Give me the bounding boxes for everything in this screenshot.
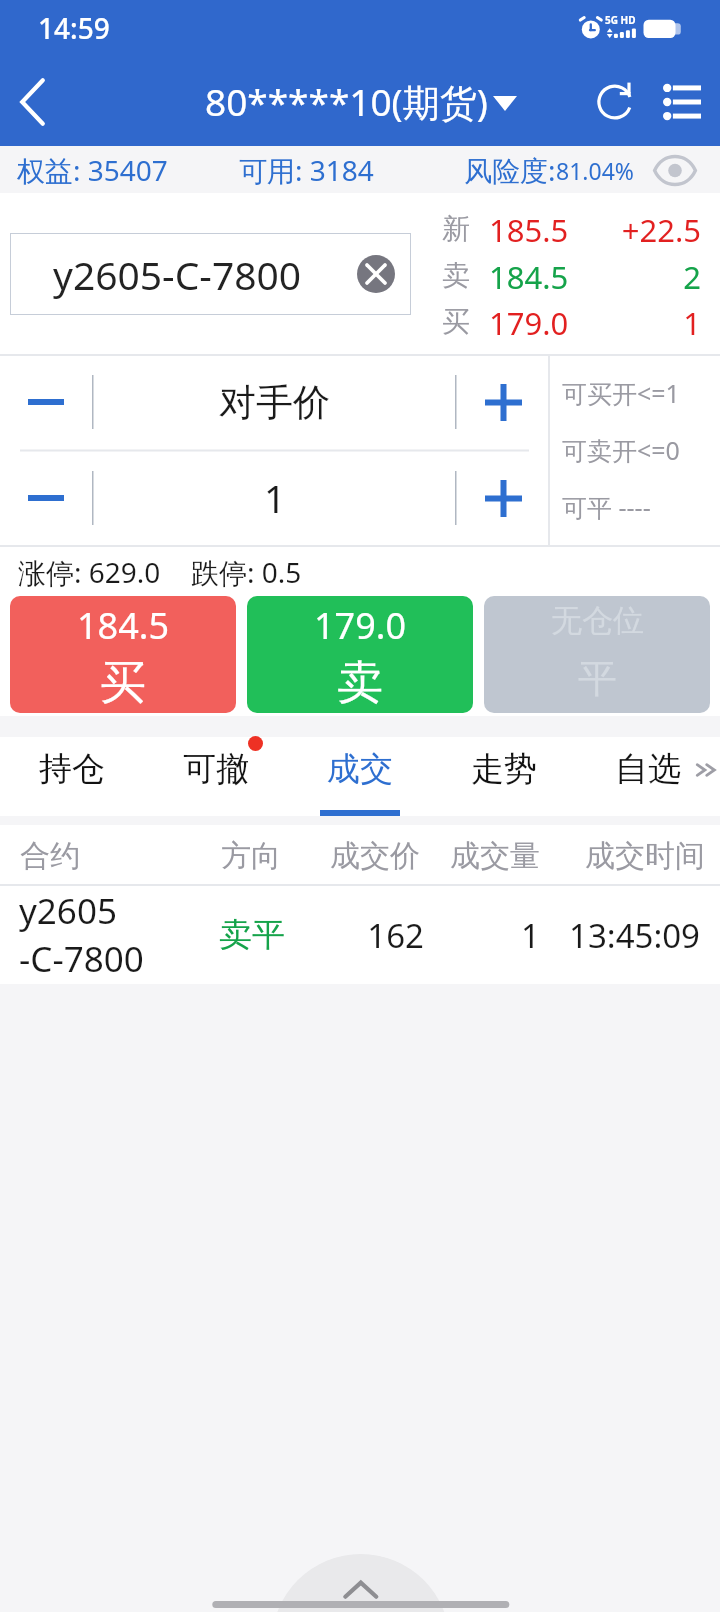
button[interactable]: 179.0 <box>247 596 473 713</box>
staticText: 合约 <box>20 837 80 875</box>
button[interactable]: 80*****10(期货) <box>205 76 517 127</box>
button[interactable]: Increase <box>457 450 549 546</box>
button[interactable]: Decrease <box>0 450 92 546</box>
button[interactable]: y2605-C-7800 <box>10 233 411 315</box>
staticText: 买 <box>442 304 470 339</box>
staticText: 平 <box>578 654 617 703</box>
staticText: 13:45:09 <box>0 913 700 958</box>
staticText: 可用: 3184 <box>239 151 374 189</box>
staticText: +22.5 <box>560 209 701 251</box>
staticText: 自选 <box>615 748 681 790</box>
staticText: y2605-C-7800 <box>53 248 302 301</box>
staticText: 风险度: <box>464 151 556 189</box>
staticText: 成交时间 <box>0 837 705 875</box>
staticText: 5G HD <box>605 13 636 27</box>
staticText: 81.04% <box>556 155 634 186</box>
button[interactable]: 自选 <box>576 737 720 816</box>
staticText: 权益: 35407 <box>17 151 168 189</box>
button[interactable]: 184.5 <box>10 596 236 713</box>
staticText: 可平 ---- <box>562 490 651 524</box>
button[interactable]: Back <box>0 57 64 146</box>
staticText: y2605 <box>19 887 117 935</box>
staticText: 卖 <box>337 654 383 712</box>
staticText: 可买开<=1 <box>562 376 680 410</box>
staticText: 可卖开<=0 <box>562 433 680 467</box>
button[interactable]: Decrease <box>0 354 92 450</box>
staticText: 跌停: 0.5 <box>191 553 302 591</box>
staticText: 无仓位 <box>551 601 644 640</box>
staticText: 成交价 <box>0 837 420 875</box>
button[interactable]: Menu <box>644 57 720 146</box>
staticText: 对手价 <box>219 379 330 426</box>
staticText: 可撤 <box>183 748 249 790</box>
staticText: 14:59 <box>38 9 110 47</box>
staticText: 184.5 <box>489 256 569 298</box>
staticText: 179.0 <box>314 601 407 650</box>
staticText: 成交量 <box>0 837 540 875</box>
staticText: 成交 <box>327 748 393 790</box>
staticText: 卖平 <box>0 914 285 956</box>
staticText: 持仓 <box>39 748 105 790</box>
button[interactable]: Refresh <box>576 57 652 146</box>
button[interactable]: 无仓位 <box>484 596 710 713</box>
button[interactable]: y2605 <box>0 886 720 984</box>
staticText: 方向 <box>0 837 281 875</box>
staticText: 走势 <box>471 748 537 790</box>
staticText: 1 <box>0 913 540 958</box>
staticText: 买 <box>100 654 146 712</box>
button[interactable]: More tabs <box>692 737 720 816</box>
staticText: -C-7800 <box>19 935 144 983</box>
staticText: 80*****10(期货) <box>205 76 488 127</box>
button[interactable]: Increase <box>457 354 549 450</box>
staticText: 1 <box>264 472 286 524</box>
button[interactable]: Clear <box>357 255 395 293</box>
staticText: 卖 <box>442 258 470 293</box>
staticText: 2 <box>560 256 701 298</box>
button[interactable]: Toggle balance visibility <box>651 148 699 192</box>
staticText: 涨停: 629.0 <box>18 553 161 591</box>
button[interactable]: 可撤 <box>144 737 288 816</box>
staticText: 184.5 <box>77 601 170 650</box>
button[interactable]: 成交 <box>288 737 432 816</box>
staticText: 162 <box>0 913 424 958</box>
button[interactable]: 持仓 <box>0 737 144 816</box>
staticText: 1 <box>560 302 701 344</box>
staticText: 185.5 <box>489 209 569 251</box>
staticText: 新 <box>442 211 470 246</box>
staticText: 179.0 <box>489 302 569 344</box>
button[interactable]: 走势 <box>432 737 576 816</box>
